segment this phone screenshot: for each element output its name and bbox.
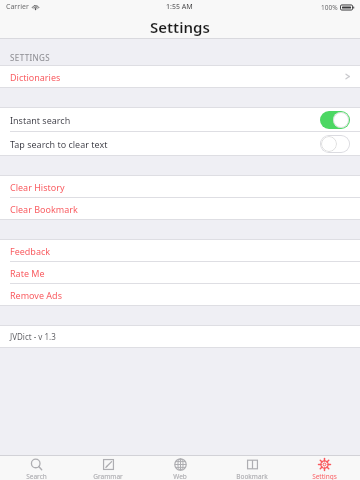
staticText: Carrier bbox=[6, 2, 29, 12]
staticText: Feedback bbox=[10, 245, 51, 257]
staticText: Remove Ads bbox=[10, 289, 62, 301]
staticText: SETTINGS bbox=[10, 52, 51, 63]
staticText: Tap search to clear text bbox=[10, 138, 108, 150]
button[interactable]: Search bbox=[0, 456, 72, 480]
button[interactable]: Instant search bbox=[0, 108, 360, 131]
button[interactable]: Web bbox=[144, 456, 216, 480]
button[interactable]: Clear History bbox=[0, 176, 360, 197]
button[interactable]: Remove Ads bbox=[0, 284, 360, 305]
button[interactable]: Dictionaries bbox=[0, 66, 360, 87]
button[interactable]: Settings bbox=[288, 456, 360, 480]
button[interactable]: Feedback bbox=[0, 240, 360, 261]
staticText: Grammar bbox=[93, 472, 123, 480]
staticText: Bookmark bbox=[236, 472, 268, 480]
staticText: Settings bbox=[312, 472, 337, 480]
staticText: Settings bbox=[150, 17, 210, 37]
staticText: JVDict - v 1.3 bbox=[10, 331, 56, 342]
staticText: 1:55 AM bbox=[166, 2, 193, 12]
staticText: Dictionaries bbox=[10, 71, 61, 83]
button[interactable]: Clear Bookmark bbox=[0, 198, 360, 219]
staticText: Web bbox=[173, 472, 187, 480]
staticText: Clear History bbox=[10, 181, 65, 193]
button[interactable]: Rate Me bbox=[0, 262, 360, 283]
button[interactable]: Grammar bbox=[72, 456, 144, 480]
staticText: Clear Bookmark bbox=[10, 203, 78, 215]
button[interactable]: Tap search to clear text bbox=[0, 132, 360, 155]
staticText: Rate Me bbox=[10, 267, 45, 279]
button[interactable]: Bookmark bbox=[216, 456, 288, 480]
staticText: Search bbox=[26, 472, 47, 480]
staticText: Instant search bbox=[10, 114, 71, 126]
staticText: 100% bbox=[321, 3, 338, 12]
